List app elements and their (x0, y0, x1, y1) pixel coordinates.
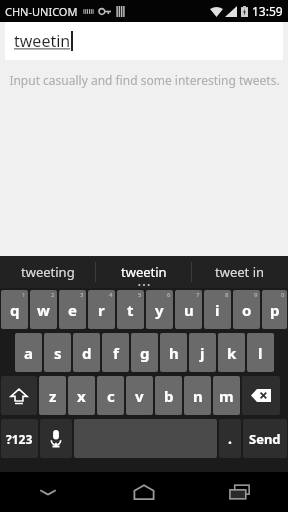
button[interactable]: m (213, 376, 240, 415)
button[interactable]: ?123 (1, 419, 38, 458)
staticText: v (135, 386, 144, 406)
staticText: t (127, 300, 134, 320)
button[interactable]: v (126, 376, 153, 415)
button[interactable]: Voice input (40, 419, 72, 458)
staticText: 3 (80, 291, 84, 299)
button[interactable]: n (184, 376, 211, 415)
staticText: f (113, 343, 119, 363)
button[interactable]: g (131, 333, 158, 372)
button[interactable]: b (155, 376, 182, 415)
staticText: m (219, 386, 234, 406)
button[interactable]: tweetin (5, 22, 283, 60)
staticText: w (37, 300, 50, 320)
button[interactable]: Home (96, 472, 192, 512)
button[interactable]: u (175, 290, 202, 329)
staticText: Input casually and find some interesting… (9, 72, 280, 88)
button[interactable]: z (39, 376, 66, 415)
staticText: i (215, 300, 220, 320)
button[interactable]: p (262, 290, 287, 329)
staticText: . (228, 429, 232, 448)
button[interactable]: a (15, 333, 42, 372)
button[interactable]: o (233, 290, 260, 329)
staticText: z (49, 386, 57, 406)
staticText: 7 (196, 291, 200, 299)
staticText: p (270, 300, 280, 320)
button[interactable]: l (247, 333, 274, 372)
staticText: tweet in (215, 263, 265, 281)
button[interactable]: j (189, 333, 216, 372)
staticText: c (107, 386, 115, 406)
staticText: b (164, 386, 174, 406)
button[interactable]: . (219, 419, 241, 458)
button[interactable]: t (117, 290, 144, 329)
staticText: d (82, 343, 92, 363)
button[interactable]: w (30, 290, 57, 329)
staticText: CHN-UNICOM (5, 4, 78, 19)
staticText: u (184, 300, 194, 320)
staticText: n (193, 386, 203, 406)
button[interactable]: Send (243, 419, 287, 458)
staticText: h (169, 343, 179, 363)
staticText: 0 (281, 291, 285, 299)
staticText: tweetin (121, 263, 167, 281)
staticText: s (54, 343, 62, 363)
staticText: 5 (138, 291, 142, 299)
button[interactable]: s (44, 333, 71, 372)
staticText: g (140, 343, 150, 363)
staticText: 2 (51, 291, 55, 299)
staticText: 13:59 (252, 3, 283, 19)
staticText: k (227, 343, 237, 363)
staticText: q (10, 300, 20, 320)
button[interactable]: Recent apps (192, 472, 288, 512)
staticText: tweeting (21, 263, 75, 281)
staticText: a (24, 343, 33, 363)
staticText: 1 (22, 291, 26, 299)
button[interactable]: Shift (1, 376, 37, 415)
button[interactable]: i (204, 290, 231, 329)
button[interactable]: tweeting (0, 256, 96, 288)
staticText: l (258, 343, 263, 363)
button[interactable]: f (102, 333, 129, 372)
button[interactable]: tweet in (192, 256, 288, 288)
button[interactable]: q (1, 290, 28, 329)
button[interactable]: d (73, 333, 100, 372)
staticText: tweetin (14, 30, 71, 52)
button[interactable]: y (146, 290, 173, 329)
staticText: 8 (225, 291, 229, 299)
staticText: 6 (167, 291, 171, 299)
staticText: ?123 (6, 431, 33, 447)
staticText: o (242, 300, 252, 320)
button[interactable]: h (160, 333, 187, 372)
staticText: j (200, 343, 205, 363)
button[interactable]: r (88, 290, 115, 329)
staticText: 9 (254, 291, 258, 299)
staticText: x (77, 386, 86, 406)
staticText: 4 (109, 291, 113, 299)
button[interactable]: Hide keyboard (0, 472, 96, 512)
staticText: r (98, 300, 105, 320)
staticText: e (68, 300, 77, 320)
staticText: Send (249, 430, 281, 448)
button[interactable]: c (97, 376, 124, 415)
button[interactable]: x (68, 376, 95, 415)
button[interactable]: Backspace (242, 376, 280, 415)
staticText: y (155, 300, 164, 320)
button[interactable]: tweetin (96, 256, 192, 288)
button[interactable]: e (59, 290, 86, 329)
button[interactable]: k (218, 333, 245, 372)
